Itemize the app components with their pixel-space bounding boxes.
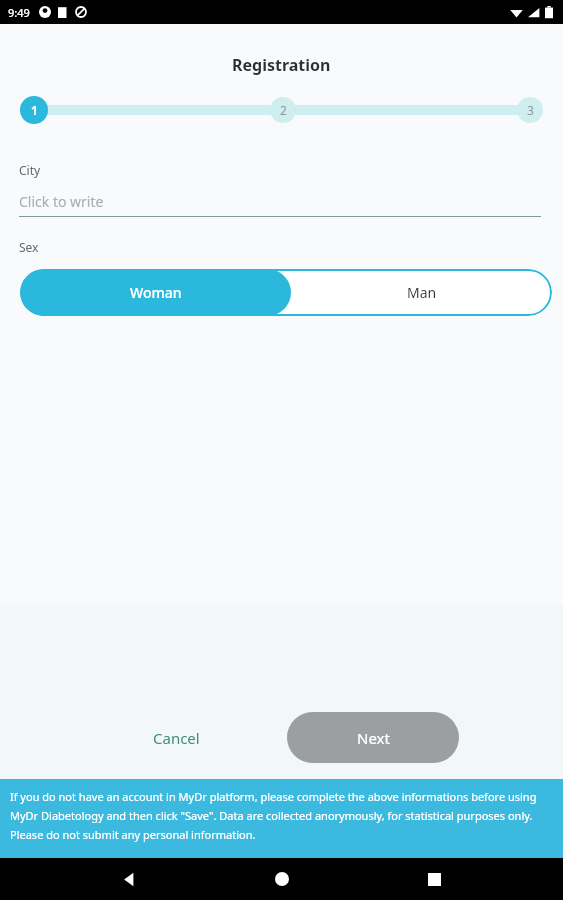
button[interactable]: 2 — [270, 97, 296, 123]
button[interactable]: 1 — [20, 96, 48, 124]
button[interactable]: Back — [106, 858, 152, 900]
button[interactable]: Home — [259, 858, 305, 900]
button[interactable]: Next — [287, 712, 459, 763]
staticText: Woman — [130, 283, 182, 302]
staticText: Cancel — [153, 728, 200, 748]
staticText: Man — [407, 283, 437, 302]
staticText: 1 — [31, 102, 38, 118]
staticText: Registration — [232, 54, 331, 76]
staticText: 9:49 — [8, 5, 30, 20]
button[interactable]: Click to write — [19, 192, 541, 217]
staticText: City — [19, 162, 41, 178]
staticText: Sex — [19, 239, 39, 255]
button[interactable]: Man — [291, 269, 552, 316]
staticText: 2 — [280, 102, 287, 118]
staticText: If you do not have an account in MyDr pl… — [10, 789, 554, 842]
staticText: Click to write — [19, 192, 104, 211]
staticText: 3 — [527, 102, 534, 118]
button[interactable]: Recent apps — [411, 858, 457, 900]
button[interactable]: Woman — [20, 269, 291, 316]
button[interactable]: 3 — [517, 97, 543, 123]
button[interactable]: Cancel — [143, 716, 210, 760]
staticText: Next — [357, 728, 390, 748]
